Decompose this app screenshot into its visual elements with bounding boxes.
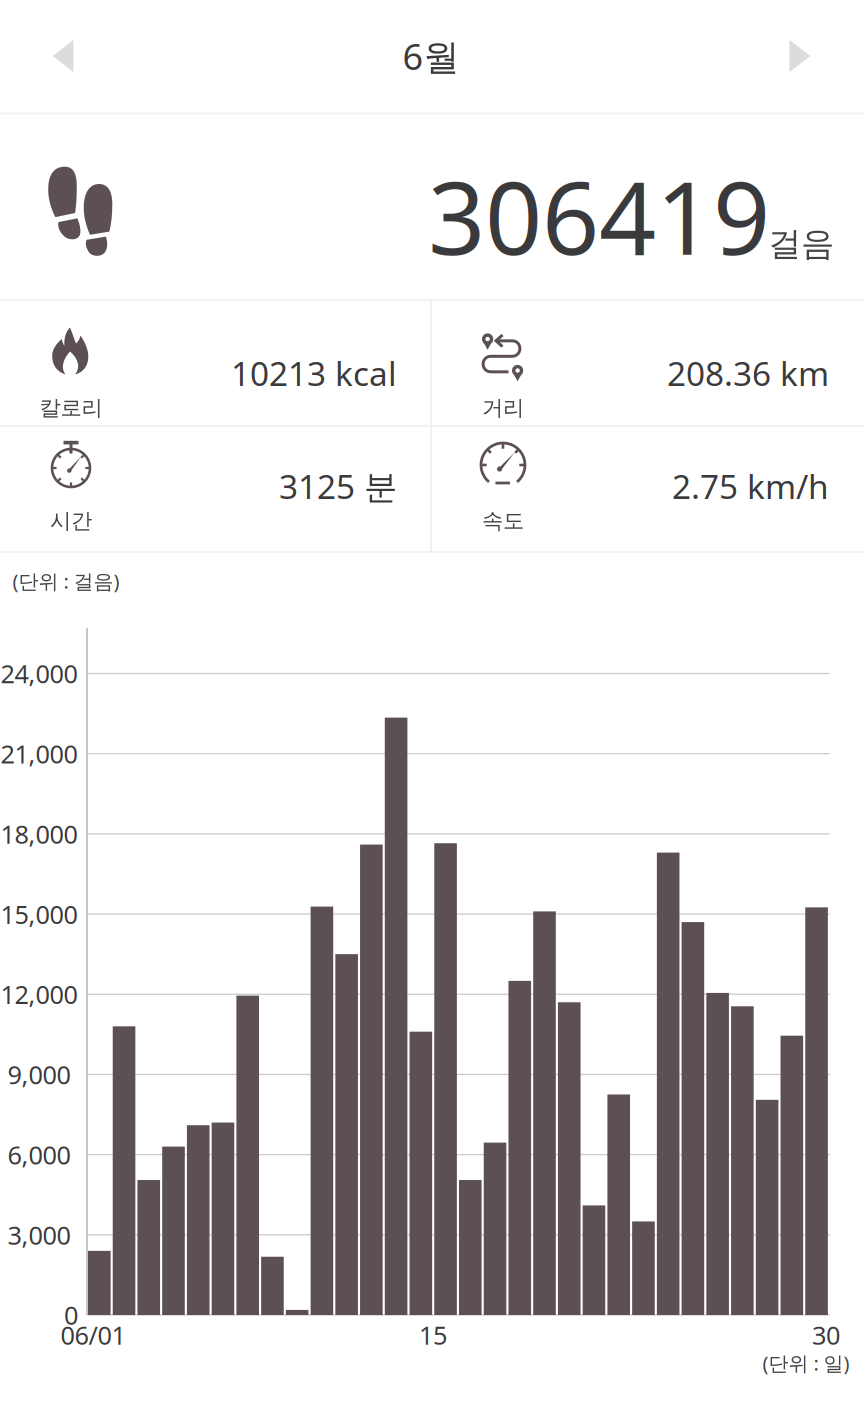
staticText: 9,000 bbox=[7, 1058, 70, 1091]
button[interactable]: Previous month bbox=[7, 0, 119, 112]
staticText: 걸음 bbox=[768, 223, 834, 264]
button[interactable]: 칼로리 bbox=[0, 300, 431, 426]
staticText: 6,000 bbox=[7, 1138, 70, 1171]
staticText: 208.36 km bbox=[667, 351, 829, 395]
staticText: 18,000 bbox=[0, 817, 77, 851]
staticText: 칼로리 bbox=[39, 395, 102, 421]
staticText: 15,000 bbox=[0, 897, 77, 931]
staticText: 306419 bbox=[428, 150, 770, 282]
staticText: 30 bbox=[812, 1318, 840, 1352]
staticText: 21,000 bbox=[0, 737, 77, 770]
staticText: 06/01 bbox=[60, 1318, 125, 1352]
button[interactable]: 거리 bbox=[432, 300, 863, 426]
staticText: 거리 bbox=[482, 395, 524, 421]
staticText: 0 bbox=[64, 1298, 78, 1332]
button[interactable]: Next month bbox=[744, 0, 856, 112]
staticText: (단위 : 일) bbox=[762, 1350, 849, 1376]
button[interactable]: 속도 bbox=[432, 426, 863, 552]
staticText: 12,000 bbox=[0, 977, 77, 1011]
staticText: 15 bbox=[419, 1318, 447, 1352]
staticText: 속도 bbox=[482, 508, 524, 534]
staticText: (단위 : 걸음) bbox=[12, 568, 119, 594]
staticText: 6월 bbox=[402, 32, 459, 80]
button[interactable]: 시간 bbox=[0, 426, 431, 552]
staticText: 24,000 bbox=[0, 657, 77, 690]
staticText: 2.75 km/h bbox=[672, 464, 829, 508]
staticText: 3125 분 bbox=[279, 464, 397, 508]
staticText: 10213 kcal bbox=[231, 351, 397, 395]
staticText: 시간 bbox=[50, 508, 92, 534]
staticText: 3,000 bbox=[7, 1218, 70, 1252]
